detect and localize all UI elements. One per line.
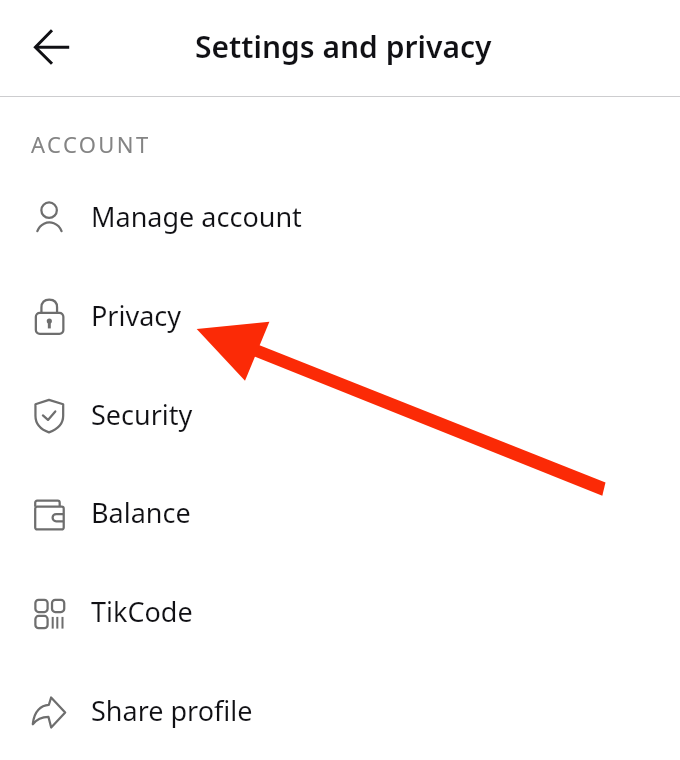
button[interactable]: Security <box>0 365 680 464</box>
staticText: TikCode <box>91 593 193 630</box>
button[interactable]: Balance <box>0 463 680 562</box>
staticText: Security <box>91 396 193 433</box>
button[interactable]: Manage account <box>0 167 680 266</box>
staticText: Privacy <box>91 297 182 334</box>
button[interactable]: Back <box>21 6 81 66</box>
staticText: Share profile <box>91 692 253 729</box>
staticText: Balance <box>91 494 191 531</box>
staticText: Settings and privacy <box>195 26 492 67</box>
staticText: Manage account <box>91 198 302 235</box>
button[interactable]: TikCode <box>0 562 680 661</box>
button[interactable]: Share profile <box>0 661 680 760</box>
staticText: ACCOUNT <box>31 129 151 159</box>
button[interactable]: Privacy <box>0 266 680 365</box>
